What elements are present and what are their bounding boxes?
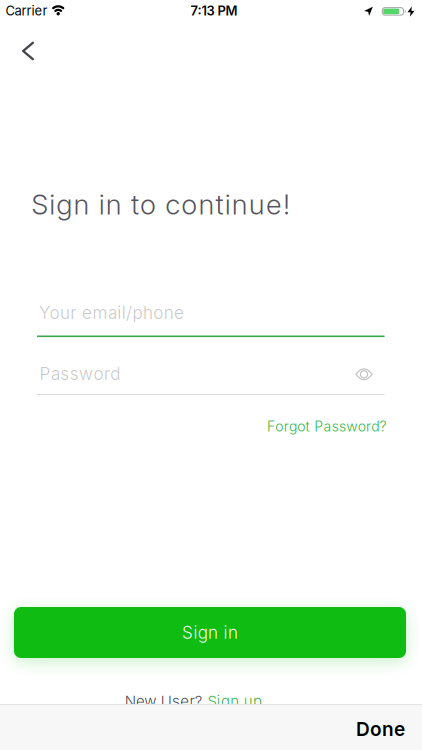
button[interactable]: Done	[340, 706, 421, 750]
button[interactable]: Show password	[344, 356, 384, 392]
staticText: 7:13 PM	[190, 3, 237, 19]
staticText: Done	[356, 717, 405, 740]
button[interactable]: Back	[6, 29, 50, 73]
staticText: Carrier	[5, 3, 47, 19]
staticText: Your email/phone	[39, 302, 184, 323]
button[interactable]: Forgot Password?	[267, 418, 387, 435]
button[interactable]: Sign in	[14, 607, 406, 658]
staticText: Sign in to continue!	[31, 188, 290, 221]
staticText: Sign in	[182, 622, 238, 643]
staticText: Sign up	[208, 692, 262, 710]
staticText: Password	[39, 364, 120, 384]
staticText: New User?	[125, 692, 203, 710]
staticText: Forgot Password?	[267, 418, 387, 435]
button[interactable]: Sign up	[208, 692, 262, 710]
